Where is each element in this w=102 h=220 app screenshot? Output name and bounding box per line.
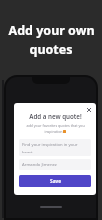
button[interactable]: Save [19, 175, 91, 187]
staticText: add your favorites quotes that you [26, 123, 85, 128]
button[interactable]: Armando Jimenez [19, 159, 91, 170]
staticText: Save [50, 178, 61, 185]
staticText: heart [22, 150, 33, 153]
button[interactable]: Close [85, 106, 93, 114]
staticText: Find your inspiration in your [22, 142, 78, 148]
staticText: Armando Jimenez [22, 162, 57, 168]
staticText: Add a new quote! [29, 112, 82, 120]
staticText: inspiration [44, 129, 63, 134]
staticText: Add your own [8, 22, 95, 39]
button[interactable]: Find your inspiration in your [19, 139, 91, 156]
staticText: quotes [29, 41, 73, 58]
